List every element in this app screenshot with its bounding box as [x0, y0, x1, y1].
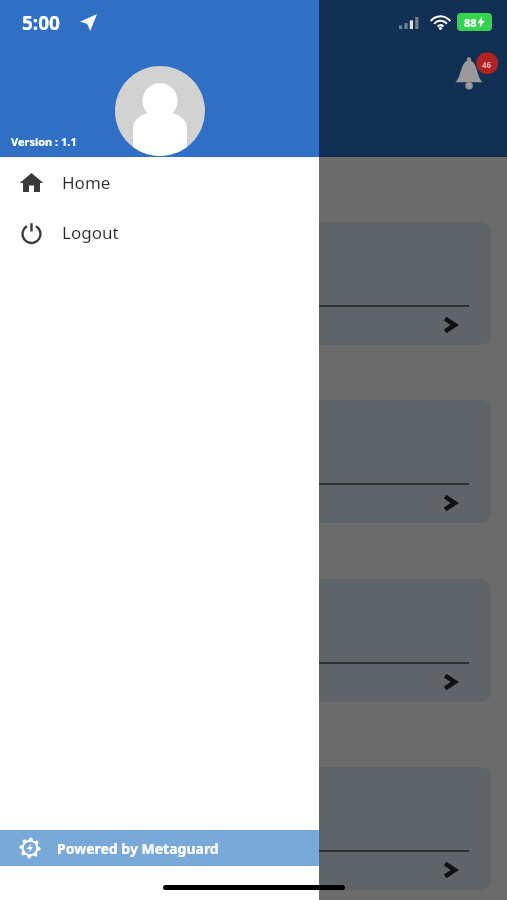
button[interactable]: Powered by Metaguard — [0, 830, 319, 866]
button[interactable]: Open details — [443, 315, 457, 335]
button[interactable]: Open details — [22, 222, 491, 345]
button[interactable]: Open details — [443, 672, 457, 692]
staticText: 46 — [482, 59, 492, 70]
button[interactable]: Profile picture — [115, 66, 205, 156]
button[interactable]: Open details — [22, 400, 491, 523]
button[interactable]: Home — [0, 157, 319, 207]
button[interactable]: Notifications — [446, 50, 494, 94]
button[interactable]: Open details — [22, 579, 491, 702]
staticText: Version : 1.1 — [11, 134, 77, 149]
staticText: Logout — [62, 221, 119, 244]
staticText: 5:00 — [22, 10, 60, 36]
button[interactable]: Open details — [443, 493, 457, 513]
staticText: 88 — [464, 15, 477, 30]
button[interactable]: Open details — [22, 767, 491, 890]
staticText: Powered by Metaguard — [57, 839, 219, 858]
button[interactable]: Logout — [0, 207, 319, 257]
staticText: Home — [62, 171, 111, 194]
button[interactable]: Open details — [443, 860, 457, 880]
